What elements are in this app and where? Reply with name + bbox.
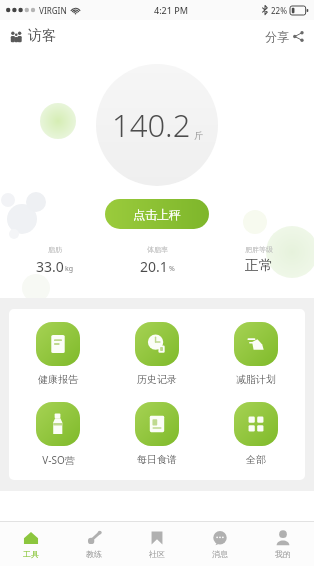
staticText: 33.0 <box>36 257 64 276</box>
staticText: 4:21 PM <box>154 4 188 16</box>
staticText: 分享 <box>265 29 289 44</box>
staticText: 健康报告 <box>38 373 78 386</box>
button[interactable]: 消息 <box>188 522 251 566</box>
button[interactable]: 历史记录 <box>107 320 206 388</box>
staticText: 全部 <box>246 453 266 466</box>
staticText: 20.1 <box>140 257 168 276</box>
button[interactable]: V-SO营 <box>9 400 107 469</box>
staticText: 减脂计划 <box>236 373 276 386</box>
button[interactable]: 肥胖等级 <box>208 245 310 275</box>
staticText: 体脂率 <box>147 245 168 254</box>
button[interactable]: 健康报告 <box>9 320 107 388</box>
staticText: V-SO营 <box>42 453 75 467</box>
staticText: 消息 <box>212 549 228 559</box>
staticText: % <box>169 264 175 274</box>
button[interactable]: 体脂率 <box>106 245 208 276</box>
staticText: 教练 <box>86 549 102 559</box>
staticText: VIRGIN <box>39 5 67 16</box>
staticText: 每日食谱 <box>137 453 177 466</box>
button[interactable]: 脂肪 <box>4 245 106 276</box>
button[interactable]: 分享 Share <box>257 25 314 48</box>
staticText: 22% <box>271 5 287 16</box>
staticText: kg <box>65 264 74 274</box>
button[interactable]: 点击上秤 <box>105 199 209 229</box>
staticText: 访客 <box>28 27 56 45</box>
staticText: 点击上秤 <box>133 207 181 222</box>
button[interactable]: 我的 <box>251 522 314 566</box>
button[interactable]: 每日食谱 <box>107 400 206 468</box>
button[interactable]: 教练 <box>62 522 125 566</box>
staticText: 140.2 <box>112 104 191 146</box>
staticText: 斤 <box>194 130 203 141</box>
staticText: 我的 <box>275 549 291 559</box>
staticText: 历史记录 <box>137 373 177 386</box>
button[interactable]: 工具 <box>0 522 62 566</box>
staticText: 社区 <box>149 549 165 559</box>
button[interactable]: 减脂计划 <box>206 320 305 388</box>
button[interactable]: 140.2 <box>96 64 218 186</box>
staticText: 肥胖等级 <box>245 245 273 254</box>
staticText: 脂肪 <box>48 245 62 254</box>
button[interactable]: 社区 <box>125 522 188 566</box>
button[interactable]: 访客 <box>0 23 64 49</box>
button[interactable]: 全部 <box>206 400 305 468</box>
staticText: 工具 <box>23 549 39 559</box>
staticText: 正常 <box>245 257 273 275</box>
